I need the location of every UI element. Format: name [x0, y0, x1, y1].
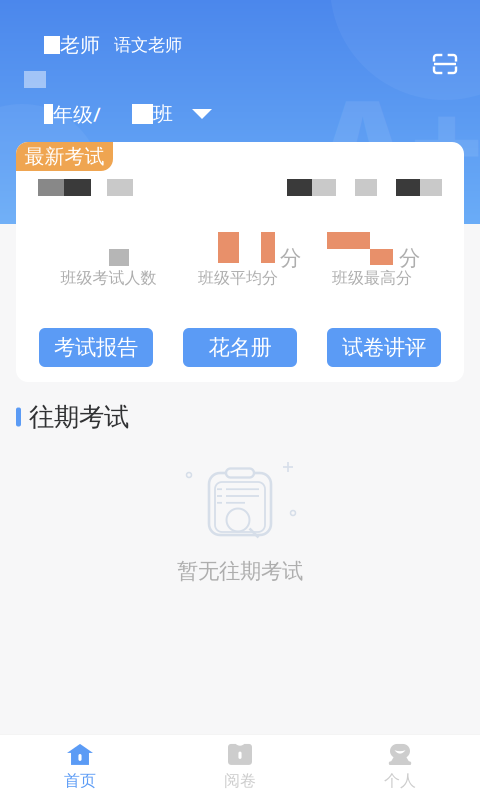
staticText: 阅卷 [224, 771, 256, 791]
button[interactable]: 阅卷 [160, 734, 320, 800]
button[interactable]: 考试报告 [39, 328, 153, 367]
staticText: 最新考试 [24, 144, 104, 169]
button[interactable]: 花名册 [183, 328, 297, 367]
button[interactable]: 年级/ [44, 99, 212, 129]
button[interactable]: 首页 [0, 734, 160, 800]
staticText: 语文老师 [114, 34, 182, 56]
staticText: 往期考试 [29, 401, 129, 432]
staticText: 首页 [64, 771, 96, 791]
staticText: 花名册 [208, 334, 271, 361]
staticText: 班级最高分 [332, 268, 412, 288]
staticText: A+ [316, 58, 480, 228]
staticText: 班 [153, 102, 173, 126]
button[interactable]: 试卷讲评 [327, 328, 441, 367]
button[interactable]: 扫一扫 [423, 42, 467, 86]
staticText: 年级/ [53, 101, 101, 127]
staticText: 考试报告 [54, 334, 138, 361]
staticText: 班级平均分 [198, 268, 278, 288]
staticText: 个人 [384, 771, 416, 791]
staticText: 暂无往期考试 [177, 558, 303, 584]
staticText: 老师 [60, 33, 100, 57]
staticText: 分 [280, 245, 301, 271]
staticText: 试卷讲评 [342, 334, 426, 361]
button[interactable]: 个人 [320, 734, 480, 800]
staticText: 分 [399, 245, 420, 271]
staticText: 班级考试人数 [60, 268, 156, 288]
